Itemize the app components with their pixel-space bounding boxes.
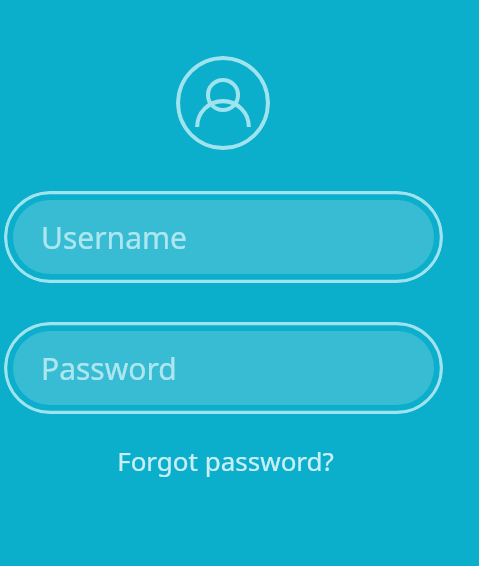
staticText: Username (41, 217, 187, 258)
staticText: Password (41, 348, 177, 389)
button[interactable]: Username (4, 191, 443, 283)
staticText: Forgot password? (117, 443, 334, 478)
button[interactable]: Forgot password? (96, 440, 354, 480)
button[interactable]: Password (4, 322, 443, 414)
button[interactable]: Profile avatar (176, 56, 270, 150)
